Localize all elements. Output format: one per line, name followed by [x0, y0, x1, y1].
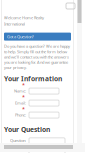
staticText: Do you have a question? We are happy to … [4, 44, 70, 70]
button[interactable]: Email: [29, 100, 59, 106]
button[interactable]: Got a Question? [4, 33, 71, 41]
button[interactable]: Question [29, 138, 65, 153]
button[interactable]: Phone: [29, 112, 59, 118]
staticText: * [22, 81, 25, 89]
staticText: Got a Question? [7, 34, 34, 39]
button[interactable]: Name: [29, 88, 59, 94]
staticText: International [4, 21, 25, 27]
staticText: Welcome Home Realty [4, 15, 44, 20]
staticText: * [22, 105, 25, 113]
staticText: Phone: [15, 112, 26, 118]
staticText: Email: [15, 100, 26, 106]
staticText: Name: [14, 88, 26, 94]
staticText: Question: [10, 138, 26, 143]
staticText: * [22, 93, 25, 101]
staticText: Your Information [4, 74, 62, 83]
staticText: Your Question [4, 125, 50, 134]
